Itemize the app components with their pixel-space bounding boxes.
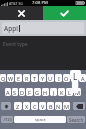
staticText: G [35, 89, 40, 96]
staticText: F [28, 89, 31, 96]
staticText: Z [16, 103, 20, 110]
staticText: U [48, 75, 53, 82]
staticText: 7:08 PM [32, 0, 48, 6]
button[interactable]: T [31, 74, 38, 82]
button[interactable]: M [74, 88, 81, 96]
button[interactable]: Z [14, 102, 22, 110]
staticText: N [56, 103, 61, 110]
button[interactable]: A [5, 88, 11, 96]
button[interactable]: Shift [1, 102, 11, 110]
button[interactable]: B [47, 102, 54, 110]
staticText: space [35, 117, 46, 122]
staticText: M [64, 103, 69, 110]
staticText: AT&T 3G [9, 1, 23, 6]
button[interactable]: X [23, 102, 30, 110]
staticText: L [68, 89, 71, 96]
button[interactable]: A [79, 74, 86, 82]
staticText: A [81, 75, 85, 82]
staticText: I [58, 75, 60, 82]
button[interactable]: G [34, 88, 41, 96]
staticText: L [73, 71, 78, 82]
staticText: R [25, 75, 29, 82]
staticText: V [41, 103, 45, 110]
staticText: O [64, 75, 69, 82]
staticText: Q [1, 75, 6, 82]
button[interactable]: J [50, 88, 57, 96]
button[interactable]: N [55, 102, 62, 110]
staticText: Search [69, 117, 84, 123]
button[interactable]: P [71, 74, 78, 82]
button[interactable]: space [14, 116, 66, 123]
button[interactable]: F [26, 88, 33, 96]
button[interactable]: K [58, 88, 65, 96]
staticText: Y [41, 75, 45, 82]
staticText: K [60, 89, 64, 96]
button[interactable]: Delete [73, 102, 85, 110]
button[interactable]: Cancel [0, 6, 43, 20]
button[interactable]: V [39, 102, 46, 110]
button[interactable]: W [7, 74, 14, 82]
button[interactable]: S [12, 88, 18, 96]
button[interactable]: .?123 [1, 116, 13, 123]
button[interactable]: C [31, 102, 38, 110]
staticText: W [8, 75, 14, 82]
staticText: Appl [4, 24, 18, 33]
button[interactable]: L [66, 88, 73, 96]
button[interactable]: Q [0, 74, 6, 82]
staticText: Event type [3, 41, 28, 48]
button[interactable]: H [42, 88, 49, 96]
staticText: M [75, 89, 80, 96]
button[interactable]: O [63, 74, 70, 82]
staticText: E [17, 75, 21, 82]
staticText: T [33, 75, 37, 82]
button[interactable]: M [63, 102, 70, 110]
button[interactable]: E [15, 74, 22, 82]
staticText: B [49, 103, 53, 110]
button[interactable]: R [23, 74, 30, 82]
button[interactable]: D [19, 88, 25, 96]
staticText: P [73, 75, 77, 82]
button[interactable]: I [55, 74, 62, 82]
staticText: X [25, 103, 29, 110]
staticText: H [43, 89, 48, 96]
button[interactable]: Search [67, 116, 85, 123]
button[interactable]: Y [39, 74, 46, 82]
staticText: S [13, 89, 17, 96]
staticText: .?123 [3, 117, 12, 122]
staticText: C [33, 103, 37, 110]
button[interactable]: Appl [2, 22, 84, 34]
staticText: A [6, 89, 10, 96]
staticText: D [20, 89, 25, 96]
button[interactable]: Done [43, 6, 86, 20]
button[interactable]: U [47, 74, 54, 82]
staticText: J [53, 89, 55, 96]
